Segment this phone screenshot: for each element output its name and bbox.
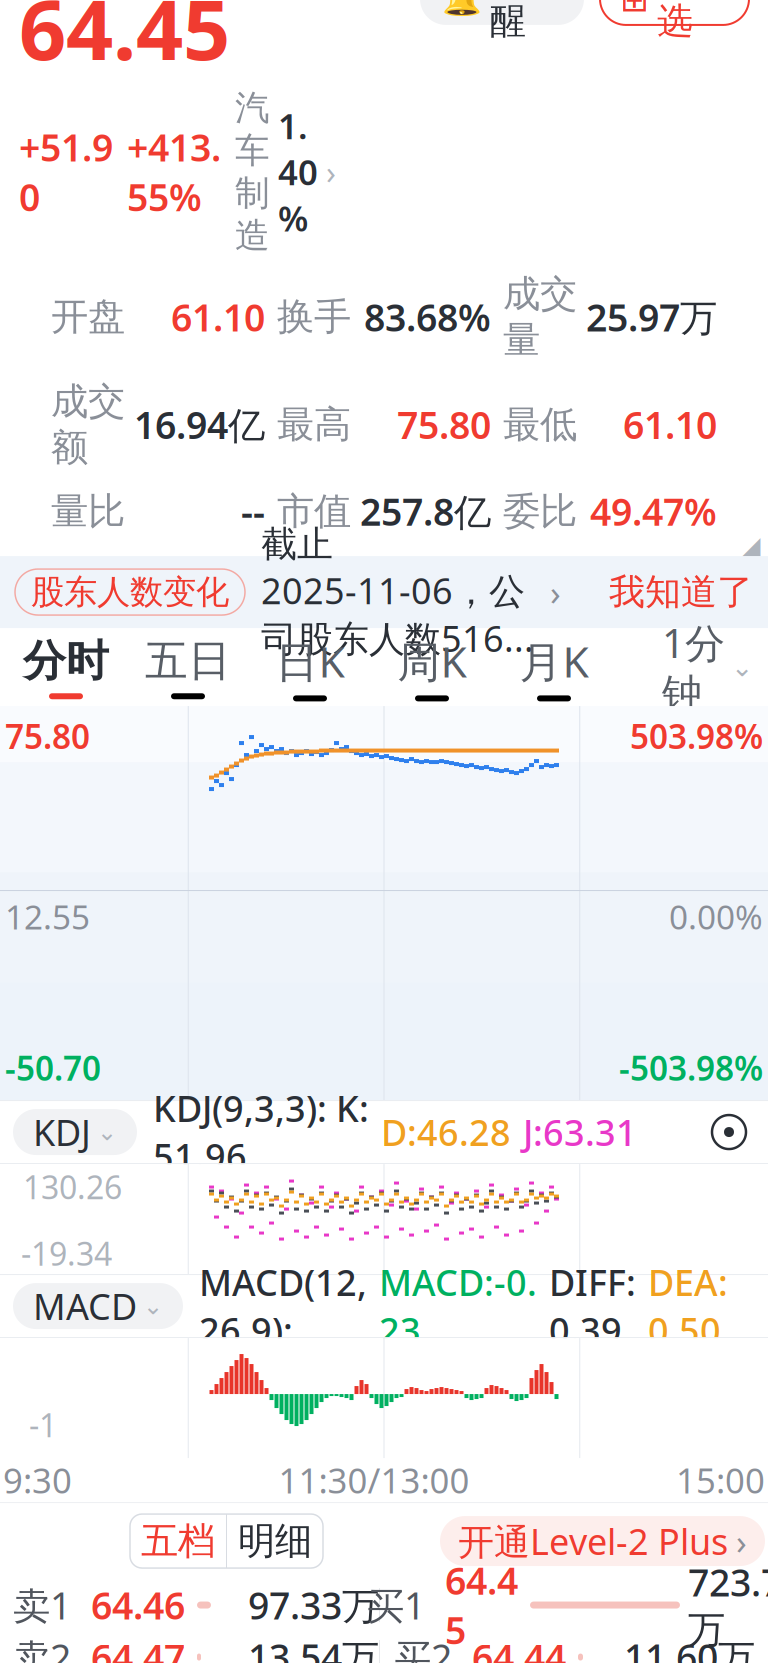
- staticText: 我知道了: [609, 570, 753, 614]
- staticText: 64.45: [19, 0, 230, 83]
- staticText: ⌄: [143, 1292, 163, 1320]
- button[interactable]: ⊞: [600, 0, 749, 25]
- staticText: 五档: [141, 1518, 215, 1564]
- staticText: D:46.28: [381, 1108, 511, 1156]
- staticText: -50.70: [5, 1046, 101, 1090]
- staticText: 加自选: [657, 0, 729, 43]
- staticText: MACD: [33, 1282, 137, 1330]
- staticText: 开盘: [51, 294, 125, 340]
- staticText: 12.55: [5, 894, 90, 939]
- staticText: 设提醒: [490, 0, 562, 43]
- staticText: 64.44: [472, 1632, 566, 1663]
- staticText: 明细: [238, 1518, 312, 1564]
- staticText: ◢: [740, 531, 761, 561]
- staticText: ›: [550, 569, 561, 615]
- staticText: 买1: [367, 1580, 425, 1630]
- staticText: 汽车制造: [235, 87, 270, 257]
- staticText: DIFF:0.39: [549, 1258, 636, 1354]
- button[interactable]: 分时: [5, 628, 127, 706]
- staticText: 75.80: [397, 400, 491, 449]
- staticText: 9:30: [3, 1457, 72, 1503]
- staticText: 五日: [145, 635, 231, 687]
- staticText: 64.47: [91, 1632, 185, 1663]
- staticText: +51.90: [19, 122, 113, 221]
- button[interactable]: 明细: [227, 1514, 323, 1568]
- staticText: ›: [326, 151, 336, 193]
- staticText: 503.98%: [630, 714, 763, 758]
- staticText: -1: [29, 1404, 57, 1446]
- staticText: 量比: [51, 488, 125, 534]
- staticText: 61.10: [623, 400, 717, 449]
- staticText: MACD(12,26,9):: [199, 1258, 367, 1354]
- staticText: 49.47%: [590, 486, 717, 536]
- staticText: 卖2: [13, 1632, 71, 1663]
- staticText: J:63.31: [523, 1108, 637, 1156]
- staticText: 周K: [397, 633, 466, 689]
- staticText: ⌄: [97, 1118, 117, 1146]
- button[interactable]: 五日: [127, 628, 249, 706]
- staticText: 11.60万: [624, 1632, 755, 1663]
- staticText: 11:30/13:00: [278, 1457, 469, 1503]
- staticText: ⌄: [731, 652, 753, 682]
- staticText: 64.46: [91, 1580, 185, 1630]
- staticText: ⊞: [620, 0, 649, 19]
- staticText: 61.10: [171, 292, 265, 342]
- staticText: ›: [736, 1518, 747, 1564]
- staticText: 月K: [519, 633, 588, 689]
- button[interactable]: Indicator settings: [703, 1106, 755, 1158]
- staticText: DEA:0.50: [648, 1258, 728, 1354]
- staticText: 13.54万: [248, 1632, 379, 1663]
- button[interactable]: 股东人数变化: [0, 556, 768, 628]
- staticText: KDJ: [33, 1108, 91, 1156]
- staticText: 股东人数变化: [31, 572, 229, 612]
- staticText: 分时: [23, 635, 109, 687]
- staticText: 卖1: [13, 1580, 71, 1630]
- staticText: 0.00%: [669, 894, 763, 939]
- staticText: 截止2025-11-06，公司股东人数516...: [261, 522, 534, 662]
- button[interactable]: 日K: [249, 628, 371, 706]
- staticText: -503.98%: [619, 1046, 763, 1090]
- staticText: 成交量: [503, 271, 577, 363]
- staticText: 日K: [275, 633, 344, 689]
- staticText: 64.45: [445, 1555, 518, 1655]
- staticText: 83.68%: [364, 292, 491, 342]
- staticText: 🔔: [442, 0, 482, 17]
- button[interactable]: 🔔: [420, 0, 584, 25]
- button[interactable]: 周K: [371, 628, 493, 706]
- staticText: 1分钟: [662, 616, 725, 718]
- staticText: --: [241, 486, 265, 536]
- button[interactable]: 五档: [130, 1514, 226, 1568]
- staticText: 开通Level-2 Plus: [458, 1517, 728, 1565]
- staticText: 1.40%: [278, 103, 318, 241]
- staticText: KDJ(9,3,3): K:51.96: [153, 1084, 369, 1180]
- staticText: -19.34: [21, 1232, 112, 1275]
- staticText: 成交额: [51, 379, 125, 470]
- staticText: 买2: [394, 1632, 452, 1663]
- staticText: 25.97万: [586, 292, 717, 342]
- button[interactable]: 开通Level-2 Plus: [440, 1516, 765, 1566]
- staticText: 257.8亿: [360, 486, 491, 536]
- staticText: 723.7万: [688, 1557, 768, 1653]
- button[interactable]: 月K: [493, 628, 615, 706]
- button[interactable]: 1分钟: [662, 628, 768, 706]
- staticText: 委比: [503, 488, 577, 534]
- staticText: 75.80: [5, 714, 90, 758]
- button[interactable]: 汽车制造: [235, 87, 346, 257]
- staticText: 市值: [277, 488, 351, 534]
- button[interactable]: MACD: [13, 1283, 183, 1329]
- staticText: +413.55%: [127, 122, 221, 221]
- staticText: 最低: [503, 402, 577, 448]
- staticText: 换手: [277, 294, 351, 340]
- staticText: 16.94亿: [134, 400, 265, 449]
- staticText: MACD:-0.23: [379, 1258, 537, 1354]
- button[interactable]: KDJ: [13, 1109, 137, 1155]
- staticText: 15:00: [676, 1457, 765, 1503]
- staticText: 最高: [277, 402, 351, 448]
- staticText: 97.33万: [248, 1580, 379, 1630]
- staticText: 130.26: [23, 1166, 122, 1208]
